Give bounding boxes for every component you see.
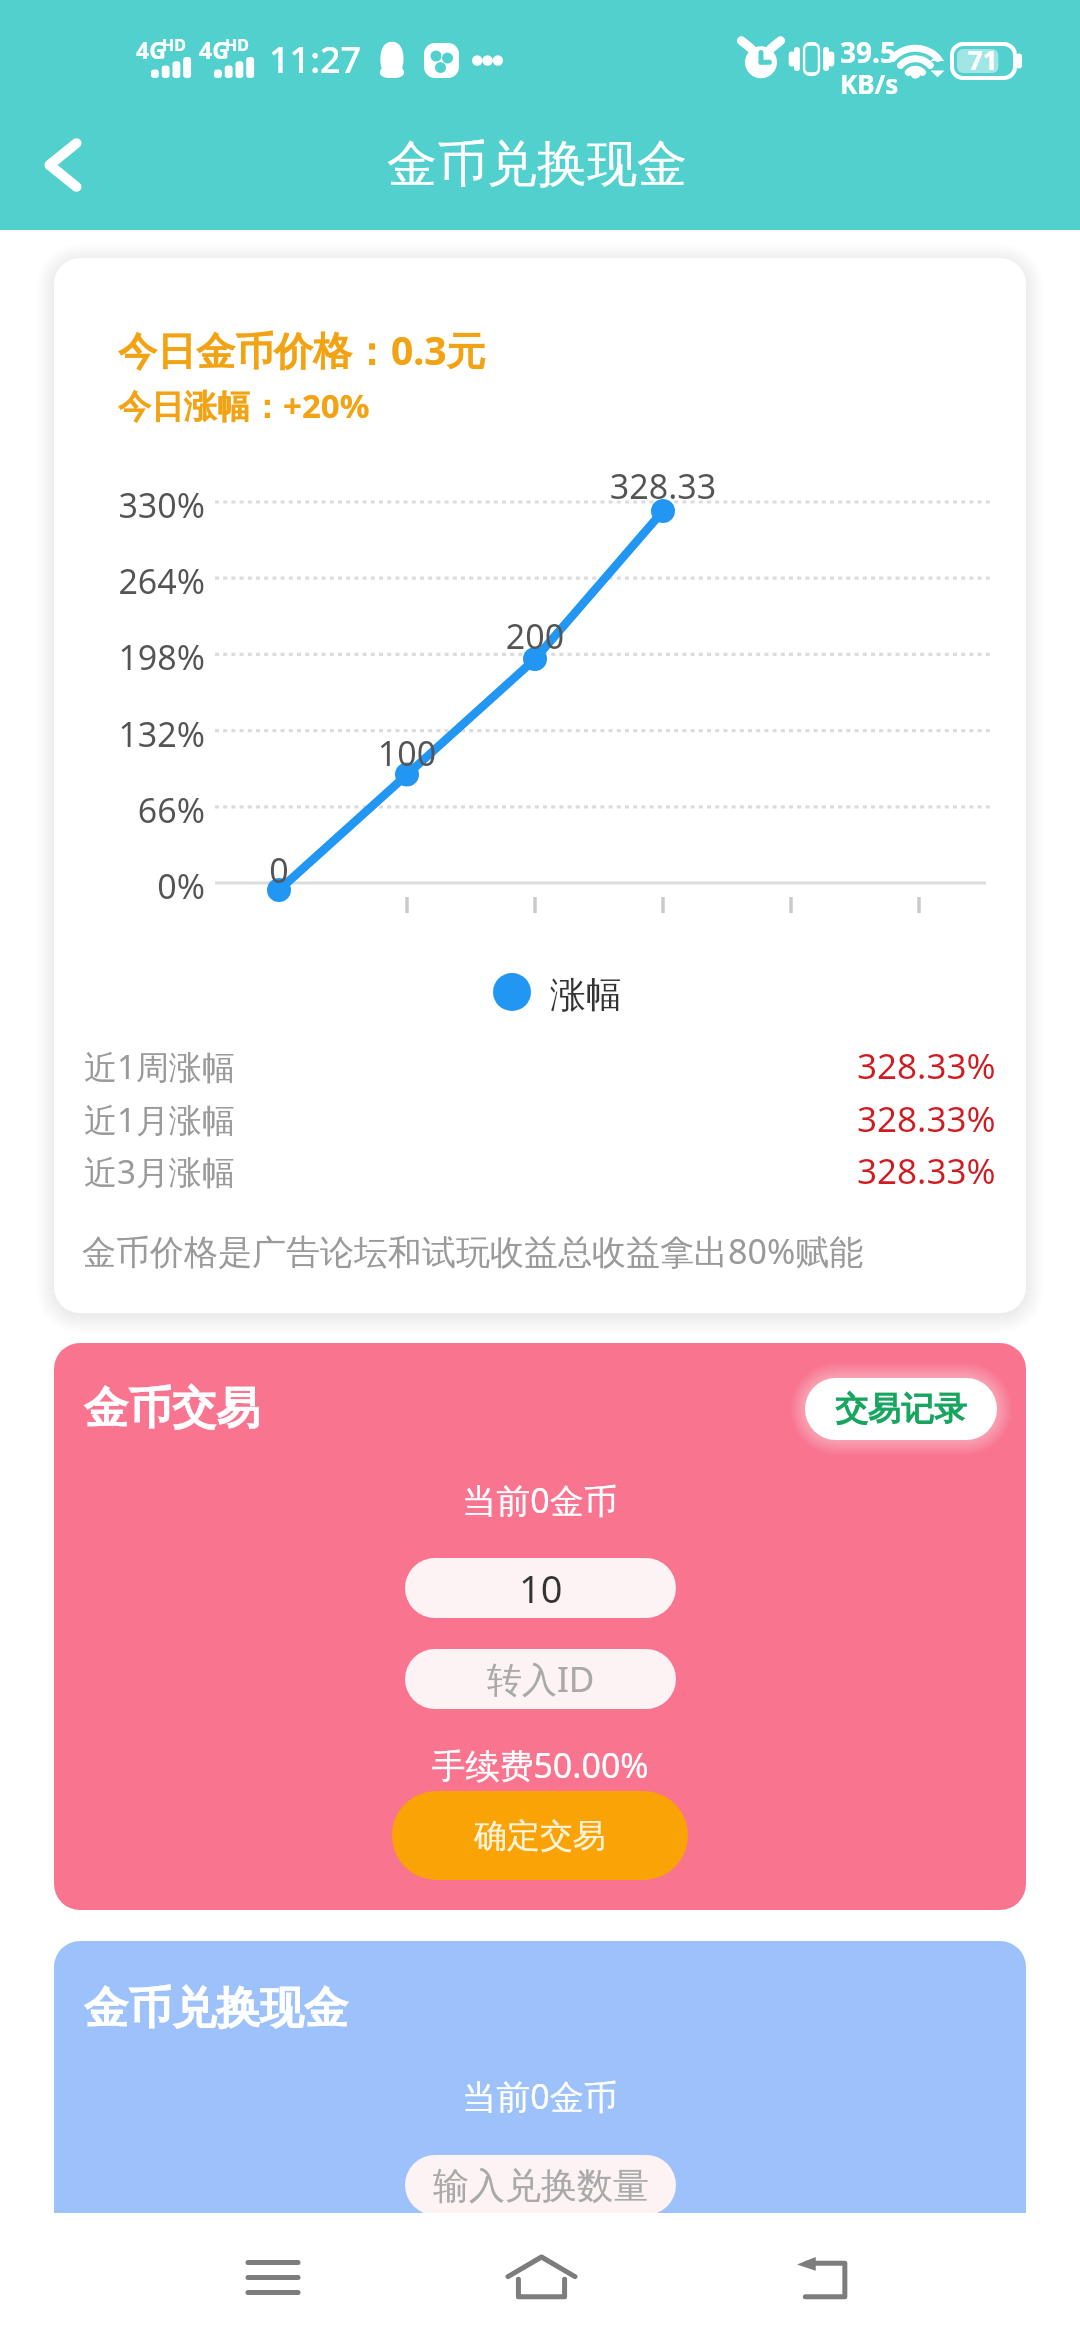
staticText: 转入ID (487, 1655, 595, 1703)
staticText: 328.33% (857, 1095, 996, 1143)
staticText: 200 (385, 613, 685, 659)
staticText: 0% (54, 863, 205, 909)
button[interactable]: 10 (405, 1558, 676, 1618)
staticText: 近1周涨幅 (84, 1044, 235, 1089)
staticText: 264% (54, 558, 205, 604)
staticText: 确定交易 (474, 1815, 606, 1857)
staticText: 4G (199, 34, 229, 65)
staticText: 当前0金币 (54, 1477, 1026, 1523)
button[interactable]: Recent apps (225, 2229, 321, 2325)
staticText: KB/s (840, 66, 899, 101)
staticText: 近1月涨幅 (84, 1097, 235, 1142)
button[interactable]: 输入兑换数量 (405, 2155, 676, 2215)
button[interactable]: 确定交易 (392, 1791, 688, 1880)
staticText: 手续费50.00% (54, 1742, 1026, 1788)
staticText: HD (225, 34, 249, 56)
staticText: 近3月涨幅 (84, 1149, 235, 1194)
button[interactable]: Back (775, 2232, 871, 2328)
staticText: 金币兑换现金 (0, 133, 1077, 196)
staticText: 金币价格是广告论坛和试玩收益总收益拿出80%赋能 (82, 1228, 864, 1274)
staticText: HD (162, 34, 186, 56)
staticText: 0 (129, 847, 429, 893)
staticText: 66% (54, 787, 205, 833)
staticText: 今日涨幅：+20% (118, 383, 370, 428)
staticText: 39.5 (840, 33, 896, 71)
staticText: 132% (54, 711, 205, 757)
button[interactable]: Home (493, 2229, 589, 2325)
staticText: 今日金币价格：0.3元 (118, 323, 486, 376)
staticText: 71 (968, 42, 998, 77)
staticText: 11:27 (269, 35, 362, 84)
staticText: 金币兑换现金 (84, 1981, 348, 2036)
button[interactable]: 交易记录 (805, 1378, 997, 1440)
staticText: 330% (54, 482, 205, 528)
staticText: 输入兑换数量 (433, 2163, 649, 2208)
staticText: 当前0金币 (54, 2073, 1026, 2119)
staticText: 4G (136, 34, 166, 65)
staticText: 交易记录 (835, 1388, 967, 1430)
staticText: 10 (519, 1562, 563, 1614)
staticText: 涨幅 (550, 972, 622, 1017)
staticText: 328.33 (513, 463, 813, 509)
staticText: 328.33% (857, 1147, 996, 1195)
staticText: 金币交易 (84, 1381, 260, 1436)
staticText: 100 (257, 730, 557, 776)
staticText: 328.33% (857, 1042, 996, 1090)
button[interactable]: 转入ID (405, 1649, 676, 1709)
button[interactable]: Back (9, 111, 117, 219)
staticText: 198% (54, 634, 205, 680)
